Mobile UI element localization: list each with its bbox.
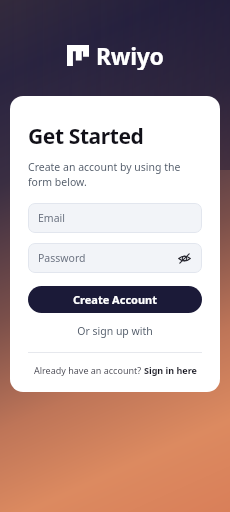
- staticText: Already have an account?: [34, 364, 144, 376]
- staticText: Create Account: [73, 292, 158, 307]
- staticText: Create an account by using the form belo…: [28, 160, 202, 189]
- button[interactable]: Show password: [177, 251, 192, 266]
- staticText: Get Started: [28, 122, 144, 151]
- staticText: Password: [38, 251, 86, 265]
- button[interactable]: Sign in here: [144, 364, 197, 376]
- button[interactable]: Email: [28, 203, 202, 233]
- button[interactable]: Or sign up with: [28, 324, 202, 338]
- staticText: Email: [38, 211, 65, 225]
- button[interactable]: Password: [28, 243, 202, 273]
- button[interactable]: Create Account: [28, 286, 202, 313]
- staticText: Rwiyo: [96, 40, 164, 70]
